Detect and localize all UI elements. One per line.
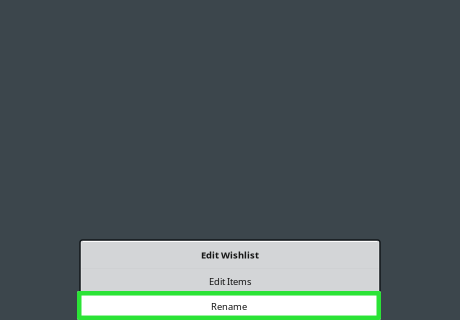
staticText: Edit Wishlist — [201, 249, 259, 261]
button[interactable]: Rename — [77, 291, 381, 320]
staticText: Rename — [211, 300, 247, 313]
button[interactable]: Edit Wishlist — [80, 240, 380, 268]
button[interactable]: Edit Items — [80, 269, 380, 292]
staticText: Edit Items — [209, 275, 251, 288]
